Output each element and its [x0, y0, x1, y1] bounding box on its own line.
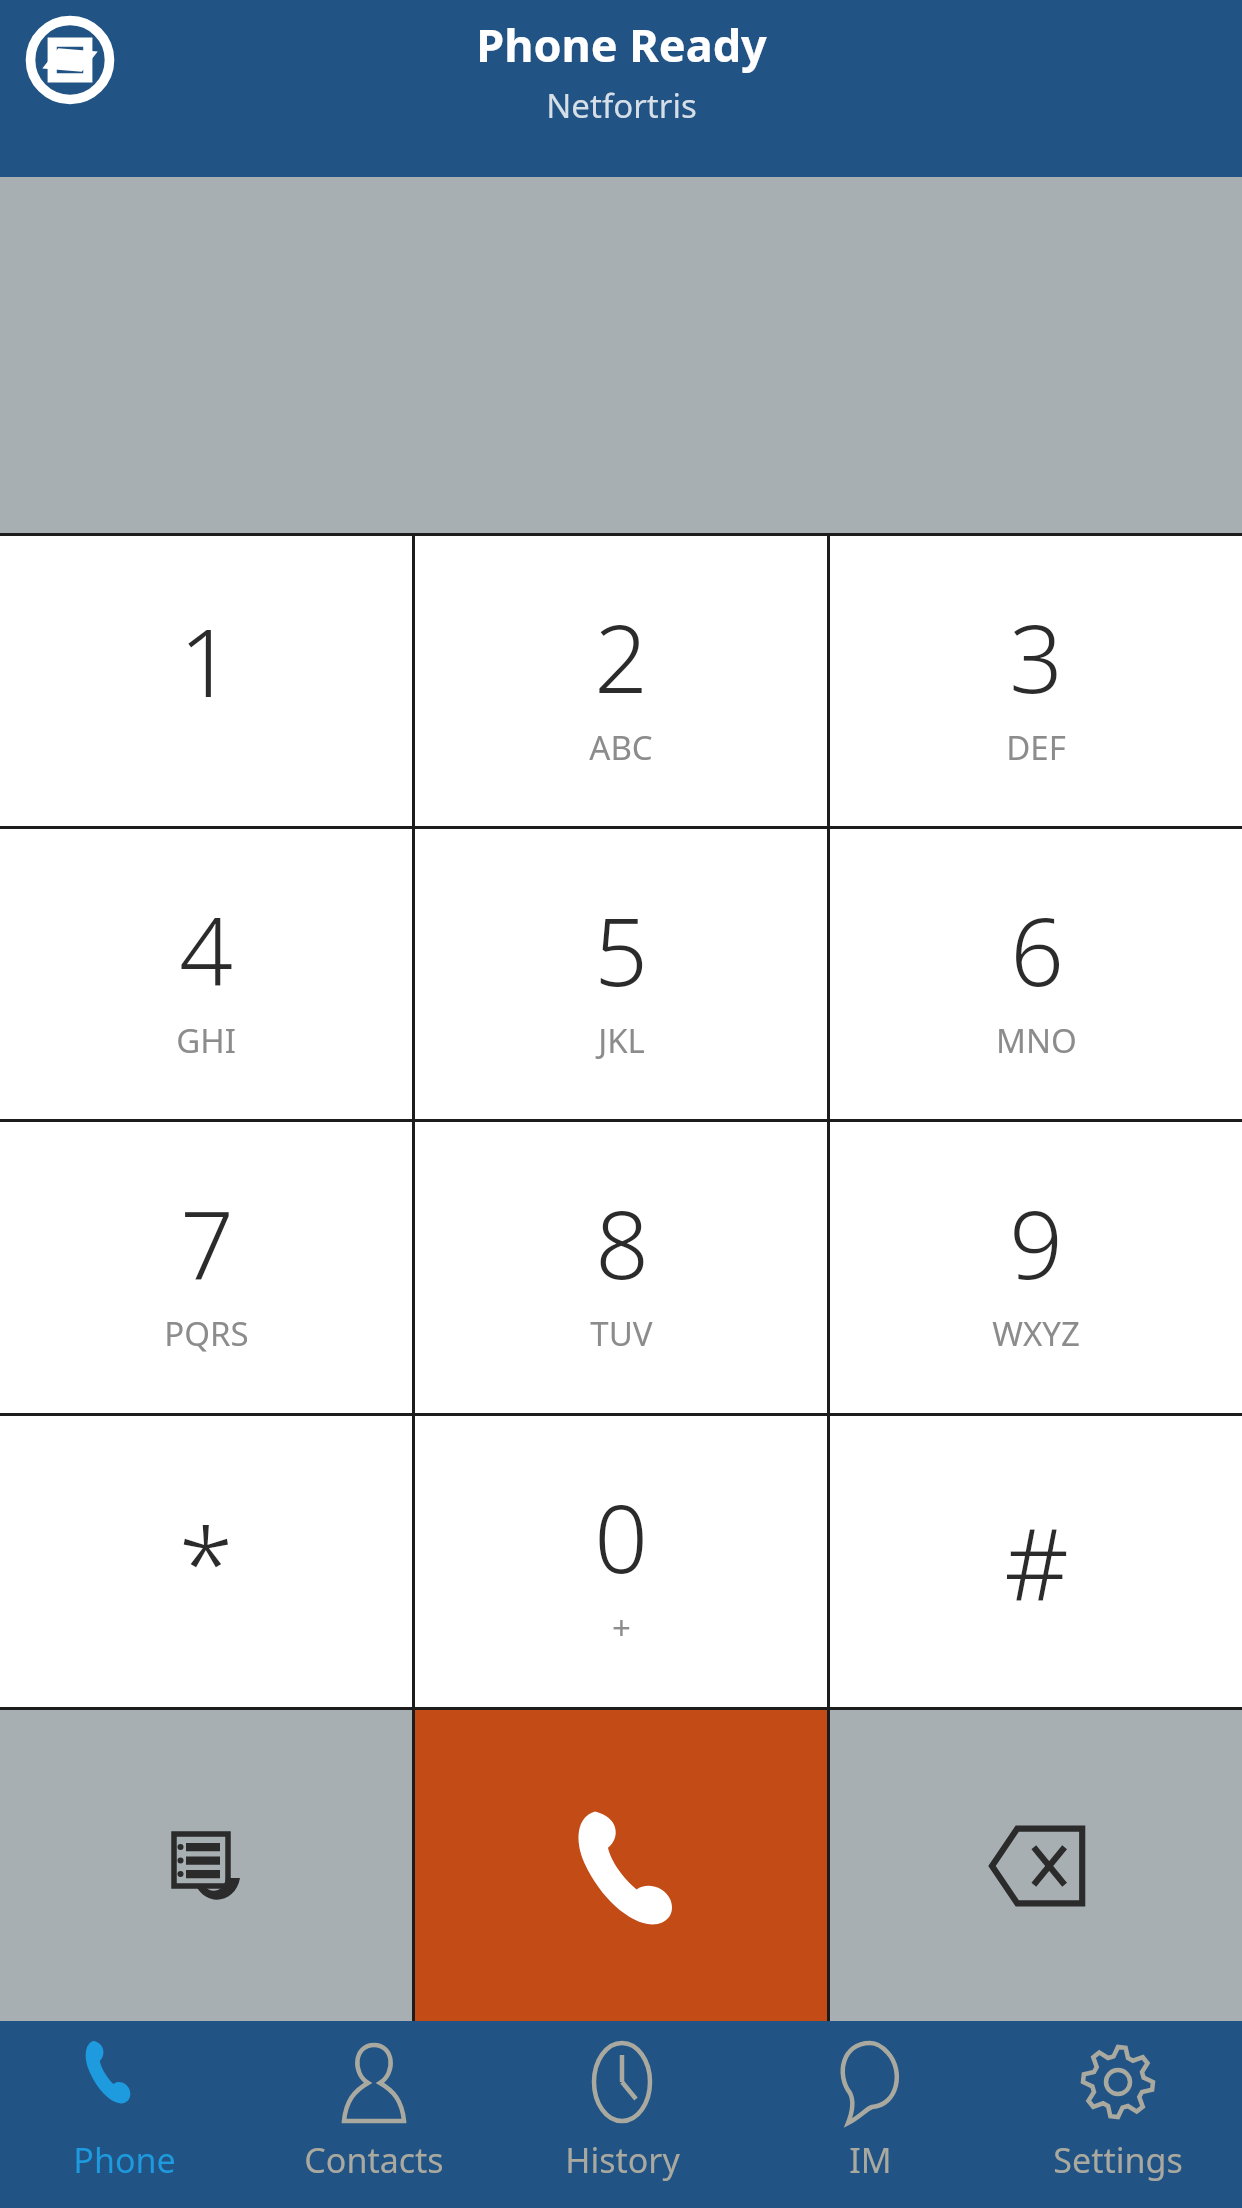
staticText: 7	[180, 1179, 234, 1307]
staticText: GHI	[176, 1018, 236, 1063]
button[interactable]: 0	[415, 1416, 827, 1707]
staticText: Netfortris	[546, 83, 697, 128]
button[interactable]: 1	[0, 536, 412, 826]
staticText: 2	[594, 593, 648, 721]
staticText: +	[612, 1605, 631, 1650]
button[interactable]: Contacts	[249, 2021, 498, 2208]
staticText: 4	[179, 886, 233, 1014]
staticText: JKL	[598, 1018, 645, 1063]
staticText: WXYZ	[992, 1311, 1080, 1356]
button[interactable]: Settings	[994, 2021, 1242, 2208]
staticText: DEF	[1006, 725, 1066, 770]
button[interactable]: 3	[830, 536, 1242, 826]
button[interactable]: Backspace	[830, 1710, 1242, 2021]
button[interactable]: 2	[415, 536, 827, 826]
button[interactable]: 5	[415, 829, 827, 1119]
staticText: IM	[849, 2137, 892, 2183]
button[interactable]: 9	[830, 1122, 1242, 1413]
staticText: #	[1004, 1494, 1069, 1630]
button[interactable]: #	[830, 1416, 1242, 1707]
button[interactable]: Call	[415, 1710, 827, 2021]
staticText: Phone Ready	[476, 14, 767, 75]
button[interactable]: 6	[830, 829, 1242, 1119]
button[interactable]: 4	[0, 829, 412, 1119]
staticText: *	[178, 1494, 234, 1630]
button[interactable]: 8	[415, 1122, 827, 1413]
staticText: 3	[1009, 593, 1063, 721]
button[interactable]: IM	[746, 2021, 994, 2208]
staticText: Contacts	[304, 2137, 444, 2183]
staticText: Phone	[73, 2137, 176, 2183]
staticText: 6	[1010, 886, 1064, 1014]
staticText: TUV	[590, 1311, 653, 1356]
button[interactable]: 7	[0, 1122, 412, 1413]
button[interactable]: *	[0, 1416, 412, 1707]
staticText: 9	[1009, 1179, 1063, 1307]
staticText: 5	[594, 886, 648, 1014]
button[interactable]: History	[498, 2021, 746, 2208]
button[interactable]: Voicemail	[0, 1710, 412, 2021]
staticText: PQRS	[164, 1311, 249, 1356]
staticText: 8	[595, 1179, 649, 1307]
staticText: 0	[594, 1473, 648, 1601]
button[interactable]: Phone	[0, 2021, 249, 2208]
staticText: History	[565, 2137, 680, 2183]
staticText: ABC	[589, 725, 653, 770]
staticText: MNO	[996, 1018, 1077, 1063]
staticText: Settings	[1053, 2137, 1183, 2183]
staticText: 1	[179, 597, 233, 725]
